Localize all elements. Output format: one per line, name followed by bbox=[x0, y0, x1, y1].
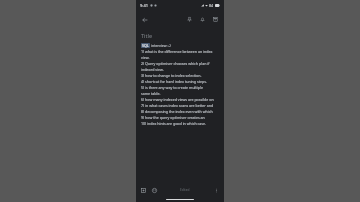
staticText: 5) is there any way to create multiple c… bbox=[141, 85, 219, 90]
staticText: 3) how to change to index selection. bbox=[141, 73, 202, 78]
staticText: 2) Query optimiser chooses which plan if… bbox=[141, 61, 219, 66]
staticText: view. bbox=[141, 55, 150, 60]
staticText: Edited bbox=[180, 188, 190, 192]
button[interactable]: SQL bbox=[141, 43, 219, 127]
button[interactable]: More options bbox=[212, 186, 221, 195]
staticText: indexed view. bbox=[141, 67, 164, 72]
staticText: 7) in what cases index scans are better … bbox=[141, 103, 219, 108]
button[interactable]: Title bbox=[141, 32, 219, 39]
staticText: 8) decomposing the index even with which… bbox=[141, 109, 219, 114]
button[interactable]: Change colour bbox=[150, 186, 159, 195]
button[interactable]: Archive bbox=[210, 14, 221, 25]
staticText: 84 bbox=[209, 3, 214, 8]
staticText: SQL bbox=[142, 43, 149, 48]
staticText: interview :-) bbox=[151, 43, 171, 48]
staticText: 10) index hints are good in which case. bbox=[141, 121, 207, 126]
staticText: 9) how the query optimiser creates an ex… bbox=[141, 115, 219, 120]
staticText: 6) how many indexed views are possible o… bbox=[141, 97, 219, 102]
button[interactable]: Reminder bbox=[197, 14, 208, 25]
button[interactable]: Add bbox=[139, 186, 148, 195]
staticText: same table. bbox=[141, 91, 161, 96]
staticText: Title bbox=[141, 32, 152, 39]
staticText: 9:41 bbox=[140, 3, 148, 8]
staticText: 1) what is the difference between an ind… bbox=[141, 49, 219, 54]
button[interactable]: Pin note bbox=[184, 14, 195, 25]
button[interactable]: Back bbox=[139, 14, 150, 25]
staticText: 4) shortcut for hard index tuning steps. bbox=[141, 79, 207, 84]
